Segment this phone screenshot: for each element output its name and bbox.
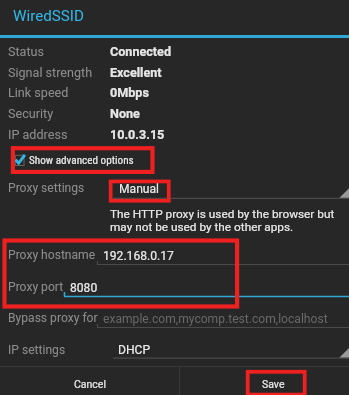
button[interactable]: Manual — [109, 178, 349, 202]
button[interactable]: 8080 — [64, 277, 349, 298]
staticText: The HTTP proxy is used by the browser bu… — [110, 207, 338, 234]
staticText: 8080 — [70, 281, 98, 295]
button[interactable]: Show advanced options — [13, 150, 154, 172]
staticText: DHCP — [118, 343, 151, 357]
staticText: Cancel — [74, 378, 106, 390]
staticText: WiredSSID — [13, 7, 84, 25]
staticText: Proxy hostname — [8, 248, 96, 262]
staticText: IP settings — [8, 343, 66, 357]
staticText: None — [110, 106, 140, 121]
staticText: 192.168.0.17 — [103, 249, 174, 263]
staticText: Link speed — [8, 85, 69, 100]
button[interactable]: 192.168.0.17 — [97, 245, 349, 266]
staticText: Signal strength — [8, 65, 93, 80]
staticText: Proxy port — [8, 280, 64, 294]
button[interactable]: DHCP — [113, 339, 349, 361]
staticText: Manual — [119, 182, 160, 196]
staticText: 10.0.3.15 — [110, 127, 165, 142]
staticText: Security — [8, 106, 54, 121]
staticText: Status — [8, 44, 45, 59]
button[interactable]: Cancel — [0, 367, 179, 395]
staticText: Bypass proxy for — [8, 311, 98, 325]
staticText: Save — [262, 378, 285, 390]
button[interactable]: example.com,mycomp.test.com,localhost — [97, 308, 349, 329]
staticText: Excellent — [110, 65, 162, 80]
staticText: Proxy settings — [8, 181, 85, 195]
staticText: 0Mbps — [110, 85, 149, 100]
staticText: IP address — [8, 127, 68, 142]
staticText: Show advanced options — [29, 154, 134, 167]
button[interactable]: Save — [180, 367, 349, 395]
staticText: example.com,mycomp.test.com,localhost — [103, 312, 328, 326]
staticText: Connected — [110, 44, 172, 59]
